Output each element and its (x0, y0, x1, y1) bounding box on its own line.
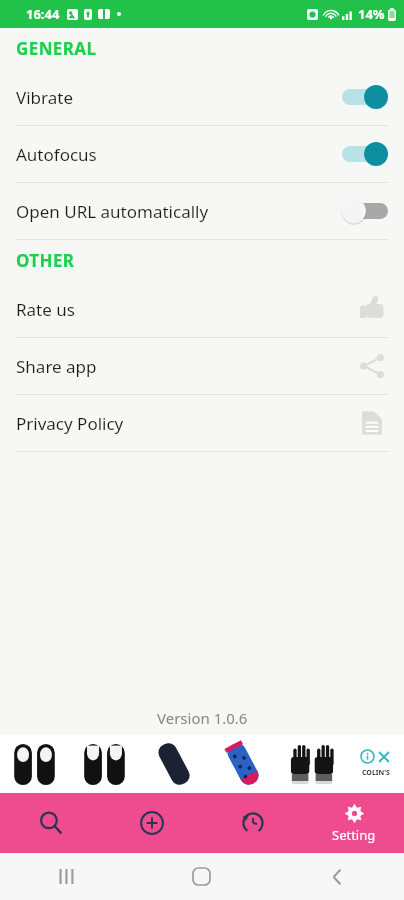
button[interactable]: Autofocus (0, 126, 404, 182)
staticText: Autofocus (16, 143, 342, 166)
button[interactable]: Recents (0, 853, 134, 900)
button[interactable]: History (202, 793, 303, 853)
staticText: Share app (16, 355, 356, 378)
staticText: Version 1.0.6 (157, 708, 248, 728)
staticText: 14% (358, 5, 385, 23)
button[interactable]: Setting (303, 793, 404, 853)
staticText: Rate us (16, 298, 356, 321)
staticText: COLIN'S (362, 768, 390, 778)
staticText: Privacy Policy (16, 412, 356, 435)
button[interactable]: COLIN'S (0, 735, 404, 793)
staticText: Open URL automatically (16, 200, 342, 223)
staticText: GENERAL (16, 37, 97, 60)
button[interactable]: Rate us (0, 281, 404, 337)
staticText: Vibrate (16, 86, 342, 109)
staticText: OTHER (16, 249, 75, 272)
staticText: 16:44 (26, 5, 60, 23)
staticText: Setting (332, 826, 376, 844)
button[interactable]: Open URL automatically (0, 183, 404, 239)
button[interactable]: Privacy Policy (0, 395, 404, 451)
button[interactable]: Home (134, 853, 269, 900)
button[interactable]: Search (0, 793, 101, 853)
button[interactable]: Back (269, 853, 404, 900)
button[interactable]: Add (101, 793, 202, 853)
button[interactable]: Vibrate (0, 69, 404, 125)
button[interactable]: Share app (0, 338, 404, 394)
